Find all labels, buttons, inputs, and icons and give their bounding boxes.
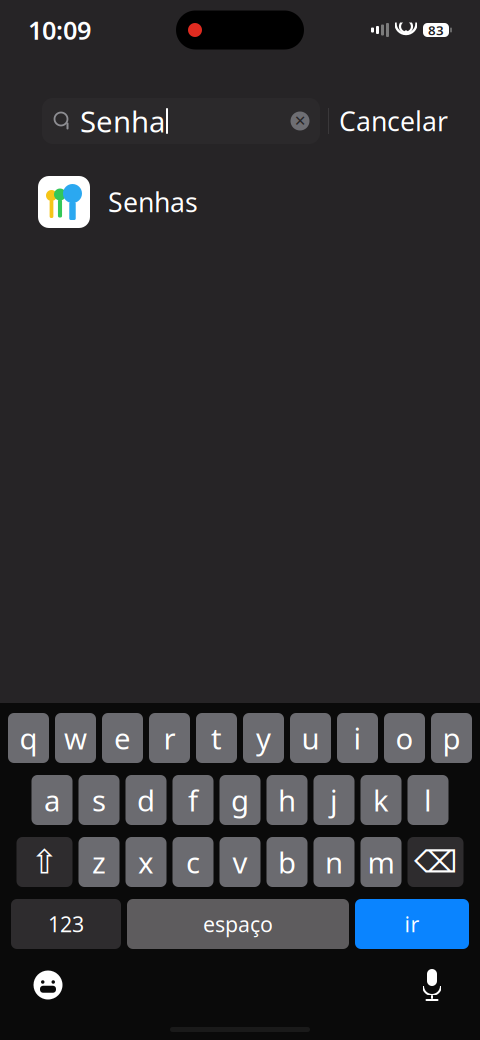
button[interactable]: g — [219, 775, 260, 825]
staticText: ✕ — [294, 113, 306, 129]
staticText: o — [395, 718, 413, 757]
button[interactable]: t — [196, 713, 237, 763]
button[interactable]: Emoji keyboard — [22, 959, 74, 1011]
button[interactable]: Shift — [16, 837, 72, 887]
staticText: b — [278, 842, 296, 881]
button[interactable]: f — [172, 775, 213, 825]
staticText: z — [92, 842, 106, 881]
staticText: Cancelar — [339, 103, 448, 139]
button[interactable]: m — [360, 837, 401, 887]
button[interactable]: d — [125, 775, 166, 825]
staticText: d — [137, 780, 155, 819]
button[interactable]: Delete — [407, 837, 463, 887]
staticText: w — [64, 718, 87, 757]
button[interactable]: r — [149, 713, 190, 763]
staticText: ⌫ — [414, 845, 457, 879]
staticText: l — [424, 780, 432, 819]
button[interactable]: j — [313, 775, 354, 825]
staticText: p — [442, 718, 460, 757]
button[interactable]: espaço — [127, 899, 349, 949]
button[interactable]: q — [8, 713, 49, 763]
staticText: 123 — [48, 910, 84, 938]
staticText: t — [211, 718, 222, 757]
button[interactable]: y — [243, 713, 284, 763]
staticText: 83 — [428, 21, 444, 39]
button[interactable]: l — [407, 775, 448, 825]
button[interactable]: u — [290, 713, 331, 763]
button[interactable]: k — [360, 775, 401, 825]
button[interactable]: Cancelar — [329, 98, 458, 144]
staticText: y — [256, 718, 271, 757]
staticText: n — [325, 842, 343, 881]
staticText: q — [19, 718, 37, 757]
staticText: m — [367, 842, 394, 881]
button[interactable]: Senhas — [0, 170, 480, 234]
staticText: f — [188, 780, 198, 819]
button[interactable]: i — [337, 713, 378, 763]
button[interactable]: e — [102, 713, 143, 763]
staticText: a — [44, 780, 60, 819]
button[interactable]: Dictation — [406, 959, 458, 1011]
button[interactable]: 123 — [11, 899, 121, 949]
staticText: v — [232, 842, 247, 881]
staticText: h — [278, 780, 296, 819]
button[interactable]: w — [55, 713, 96, 763]
staticText: e — [114, 718, 131, 757]
button[interactable]: a — [31, 775, 72, 825]
button[interactable]: p — [431, 713, 472, 763]
staticText: r — [163, 718, 175, 757]
staticText: Senha — [80, 101, 165, 140]
staticText: ⇧ — [30, 843, 58, 881]
staticText: x — [138, 842, 154, 881]
staticText: c — [186, 842, 200, 881]
button[interactable]: c — [172, 837, 213, 887]
button[interactable]: ir — [355, 899, 469, 949]
button[interactable]: v — [219, 837, 260, 887]
staticText: s — [92, 780, 106, 819]
staticText: espaço — [203, 910, 273, 938]
staticText: i — [353, 718, 361, 757]
button[interactable]: b — [266, 837, 307, 887]
staticText: Senhas — [108, 184, 198, 220]
button[interactable]: x — [125, 837, 166, 887]
button[interactable]: z — [78, 837, 119, 887]
staticText: 10:09 — [28, 13, 91, 47]
staticText: k — [373, 780, 389, 819]
button[interactable]: o — [384, 713, 425, 763]
button[interactable]: n — [313, 837, 354, 887]
staticText: j — [330, 780, 338, 819]
button[interactable]: h — [266, 775, 307, 825]
button[interactable]: Clear text — [288, 109, 312, 133]
staticText: ir — [404, 910, 419, 938]
button[interactable]: s — [78, 775, 119, 825]
staticText: u — [301, 718, 319, 757]
staticText: g — [231, 780, 249, 819]
